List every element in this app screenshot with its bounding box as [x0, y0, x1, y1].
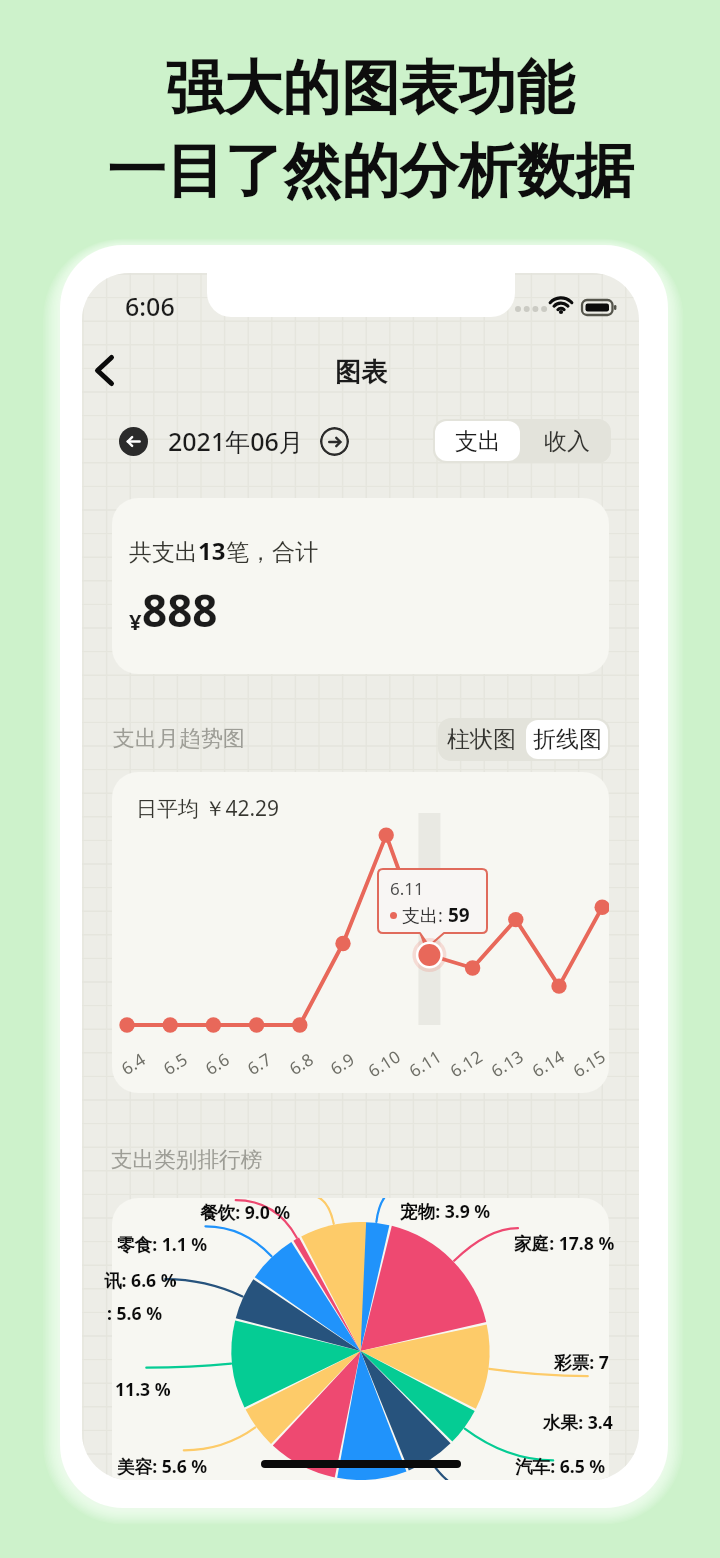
staticText: 2021年06月 — [168, 424, 304, 458]
staticText: 6.7 — [243, 1047, 276, 1080]
staticText: 家庭: 17.8 % — [514, 1231, 615, 1255]
staticText: 6.11 — [404, 1045, 445, 1082]
staticText: 11.3 % — [115, 1377, 171, 1401]
staticText: 日平均 ￥42.29 — [136, 794, 280, 823]
staticText: 6.13 — [486, 1045, 527, 1082]
staticText: 图表 — [335, 356, 387, 389]
staticText: 支出: — [402, 903, 443, 928]
staticText: 讯: 6.6 % — [104, 1268, 177, 1292]
button[interactable]: 共支出 — [112, 498, 609, 674]
staticText: 汽车: 6.5 % — [515, 1454, 606, 1478]
staticText: 强大的图表功能 — [165, 52, 575, 126]
staticText: 美容: 5.6 % — [117, 1454, 208, 1478]
staticText: 零食: 1.1 % — [117, 1232, 208, 1256]
button[interactable]: Back — [82, 342, 126, 398]
button[interactable]: 折线图 — [526, 720, 608, 759]
staticText: 6.14 — [527, 1045, 568, 1082]
button[interactable]: Previous month — [119, 427, 148, 456]
staticText: 折线图 — [533, 725, 602, 754]
staticText: 水果: 3.4 — [543, 1410, 613, 1434]
button[interactable]: 支出 — [435, 421, 520, 461]
staticText: 彩票: 7 — [554, 1350, 609, 1374]
staticText: : 5.6 % — [107, 1301, 163, 1325]
staticText: 柱状图 — [447, 725, 516, 754]
staticText: 餐饮: 9.0 % — [200, 1200, 291, 1224]
staticText: 6.5 — [159, 1047, 192, 1080]
button[interactable]: 柱状图 — [440, 720, 522, 759]
staticText: 笔，合计 — [226, 538, 318, 567]
staticText: 6.11 — [390, 877, 424, 900]
staticText: 支出月趋势图 — [113, 725, 245, 753]
staticText: 6.12 — [445, 1045, 486, 1082]
staticText: 宠物: 3.9 % — [400, 1199, 491, 1223]
staticText: 6.15 — [568, 1045, 609, 1082]
staticText: 6:06 — [125, 289, 175, 323]
button[interactable]: 收入 — [524, 421, 609, 461]
staticText: 6.8 — [285, 1047, 318, 1080]
staticText: 6.9 — [326, 1047, 359, 1080]
staticText: 59 — [443, 902, 470, 928]
staticText: 13 — [198, 534, 226, 567]
staticText: 共支出 — [129, 538, 198, 567]
staticText: 收入 — [544, 427, 590, 456]
staticText: 支出 — [455, 427, 501, 456]
staticText: 一目了然的分析数据 — [107, 135, 634, 209]
staticText: ¥ — [129, 606, 142, 636]
staticText: 888 — [142, 580, 218, 640]
staticText: 6.4 — [117, 1047, 150, 1080]
staticText: 6.6 — [201, 1047, 234, 1080]
staticText: 6.10 — [363, 1045, 404, 1082]
button[interactable]: Next month — [320, 427, 349, 456]
staticText: 支出类别排行榜 — [111, 1146, 263, 1173]
